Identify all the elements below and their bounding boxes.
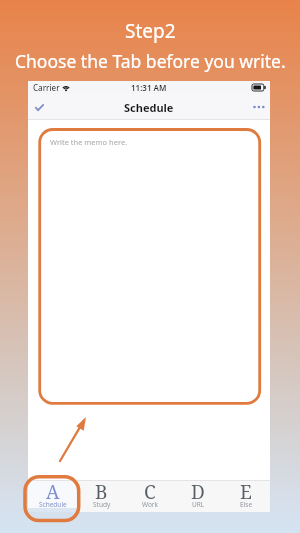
button[interactable]: A bbox=[28, 480, 77, 512]
staticText: Else bbox=[240, 500, 253, 509]
staticText: Step2 bbox=[125, 18, 176, 44]
button[interactable]: C bbox=[126, 480, 174, 512]
button[interactable]: More options bbox=[246, 94, 270, 120]
staticText: D bbox=[191, 479, 205, 505]
staticText: Schedule bbox=[124, 100, 174, 115]
staticText: Carrier bbox=[33, 82, 60, 93]
staticText: A bbox=[46, 479, 60, 505]
staticText: Write the memo here. bbox=[50, 137, 128, 147]
button[interactable]: Done bbox=[28, 94, 52, 120]
staticText: Study bbox=[93, 500, 111, 509]
button[interactable]: E bbox=[222, 480, 270, 512]
staticText: 11:31 AM bbox=[131, 82, 167, 93]
button[interactable]: D bbox=[174, 480, 222, 512]
button[interactable]: B bbox=[77, 480, 126, 512]
staticText: Schedule bbox=[39, 500, 67, 509]
staticText: B bbox=[95, 479, 108, 505]
staticText: Work bbox=[142, 500, 159, 509]
staticText: E bbox=[240, 479, 252, 505]
staticText: C bbox=[144, 479, 156, 505]
staticText: URL bbox=[192, 500, 205, 509]
staticText: Choose the Tab before you write. bbox=[15, 49, 286, 73]
